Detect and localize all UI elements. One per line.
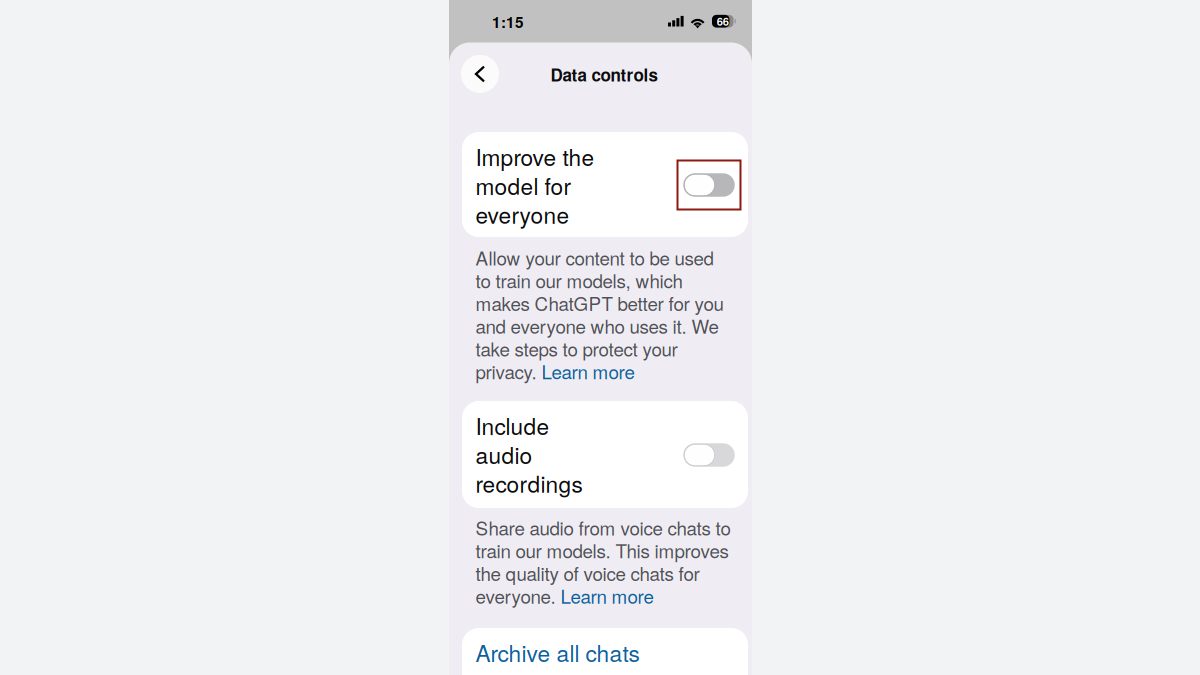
staticText: 1:15 (492, 11, 524, 33)
button[interactable]: Archive all chats (462, 628, 748, 675)
staticText: Improve the (475, 140, 594, 172)
staticText: Learn more (560, 582, 653, 609)
button[interactable]: Learn more (541, 358, 634, 384)
staticText: Include (475, 409, 549, 441)
staticText: 66 (717, 13, 729, 29)
staticText: privacy. (475, 358, 541, 384)
staticText: Share audio from voice chats to (475, 514, 730, 541)
staticText: to train our models, which (475, 267, 682, 294)
button[interactable]: Back (461, 55, 499, 93)
button[interactable]: Improve the (462, 132, 748, 237)
button[interactable]: Toggle (683, 173, 735, 197)
button[interactable]: Include (462, 401, 748, 508)
staticText: Learn more (541, 358, 634, 384)
staticText: model for (475, 169, 571, 201)
staticText: audio (475, 438, 532, 470)
staticText: everyone (475, 198, 569, 230)
staticText: Allow your content to be used (475, 244, 713, 271)
staticText: the quality of voice chats for (475, 559, 699, 586)
staticText: take steps to protect your (475, 335, 677, 362)
button[interactable]: Learn more (560, 582, 653, 609)
staticText: Data controls (550, 62, 657, 87)
staticText: makes ChatGPT better for you (475, 289, 723, 316)
staticText: everyone. (475, 582, 560, 609)
button[interactable]: Toggle (683, 443, 735, 467)
staticText: and everyone who uses it. We (475, 312, 718, 339)
staticText: Archive all chats (475, 636, 639, 668)
staticText: train our models. This improves (475, 537, 728, 564)
staticText: recordings (475, 467, 582, 499)
